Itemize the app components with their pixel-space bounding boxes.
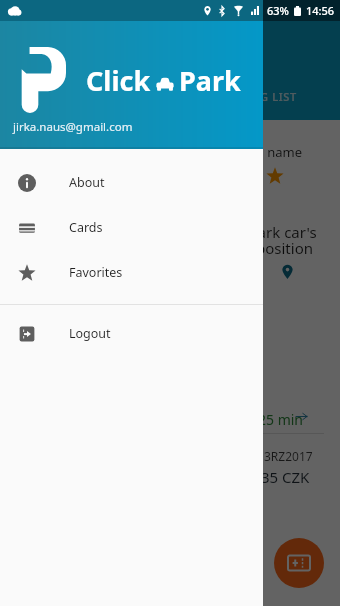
staticText: 63% (267, 3, 289, 18)
button[interactable]: Add parking ticket (274, 538, 324, 588)
button[interactable]: Mark car's (16, 213, 324, 303)
staticText: About (69, 174, 105, 191)
staticText: 3RZ2017 (264, 448, 313, 464)
staticText: PARKING LIST (216, 89, 297, 104)
staticText: Park (179, 62, 241, 99)
staticText: Favorites (69, 264, 123, 281)
staticText: Parking name (217, 143, 303, 161)
staticText: Click (86, 62, 151, 99)
staticText: MY CARS (92, 89, 144, 104)
staticText: position (256, 238, 313, 258)
staticText: 35 CZK (261, 467, 310, 487)
staticText: 14:56 (306, 3, 335, 18)
button[interactable]: Logout (0, 311, 263, 356)
staticText: Cards (69, 219, 103, 236)
staticText: jirka.naus@gmail.com (13, 119, 133, 135)
button[interactable]: Parking name (16, 136, 324, 198)
staticText: 25 min (258, 410, 304, 429)
button[interactable]: Cards (0, 205, 263, 250)
button[interactable]: About (0, 160, 263, 205)
staticText: Logout (69, 325, 111, 342)
button[interactable]: Favorites (0, 250, 263, 295)
staticText: Mark car's (244, 222, 317, 242)
button[interactable]: 25 min (16, 357, 324, 489)
